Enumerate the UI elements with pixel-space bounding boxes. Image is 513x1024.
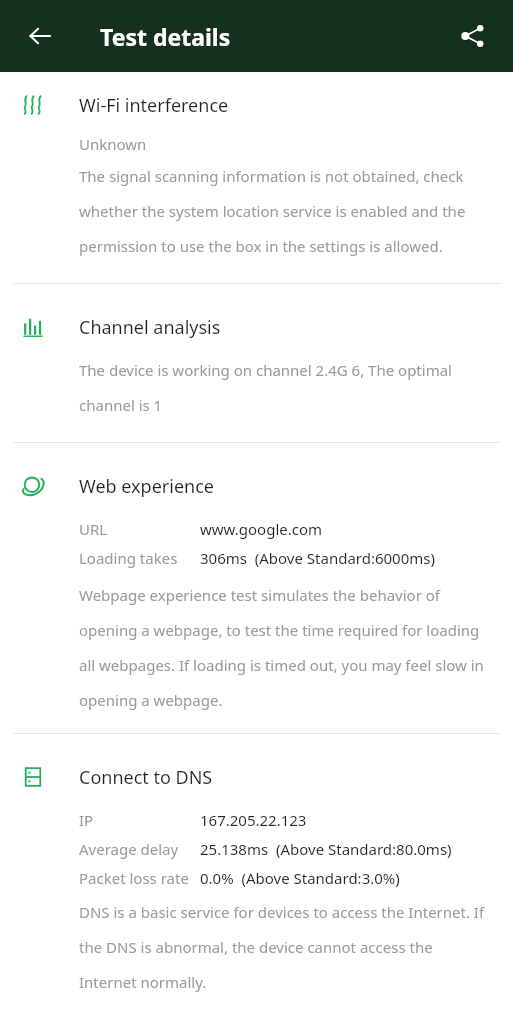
staticText: DNS is a basic service for devices to ac…	[79, 902, 489, 993]
staticText: 25.138ms (Above Standard:80.0ms)	[200, 839, 499, 859]
staticText: 167.205.22.123	[200, 810, 499, 830]
staticText: Connect to DNS	[79, 765, 213, 790]
button[interactable]: Back	[18, 14, 62, 58]
button[interactable]: Channel analysis	[0, 312, 513, 342]
button[interactable]: Connect to DNS	[0, 762, 513, 792]
button[interactable]: Share	[451, 14, 495, 58]
button[interactable]: Web experience	[0, 471, 513, 501]
staticText: 0.0% (Above Standard:3.0%)	[200, 868, 499, 888]
staticText: Web experience	[79, 474, 214, 499]
staticText: IP	[79, 810, 200, 830]
staticText: www.google.com	[200, 519, 499, 539]
staticText: Average delay	[79, 839, 200, 859]
staticText: The signal scanning information is not o…	[79, 166, 489, 257]
staticText: Packet loss rate	[79, 868, 200, 888]
staticText: 306ms (Above Standard:6000ms)	[200, 548, 499, 568]
staticText: URL	[79, 519, 200, 539]
button[interactable]: Wi-Fi interference	[0, 90, 513, 120]
staticText: Channel analysis	[79, 315, 221, 340]
staticText: Unknown	[79, 134, 489, 154]
staticText: Loading takes	[79, 548, 200, 568]
staticText: Test details	[100, 21, 231, 52]
staticText: The device is working on channel 2.4G 6,…	[79, 360, 489, 416]
staticText: Wi-Fi interference	[79, 93, 229, 118]
staticText: Webpage experience test simulates the be…	[79, 585, 489, 711]
